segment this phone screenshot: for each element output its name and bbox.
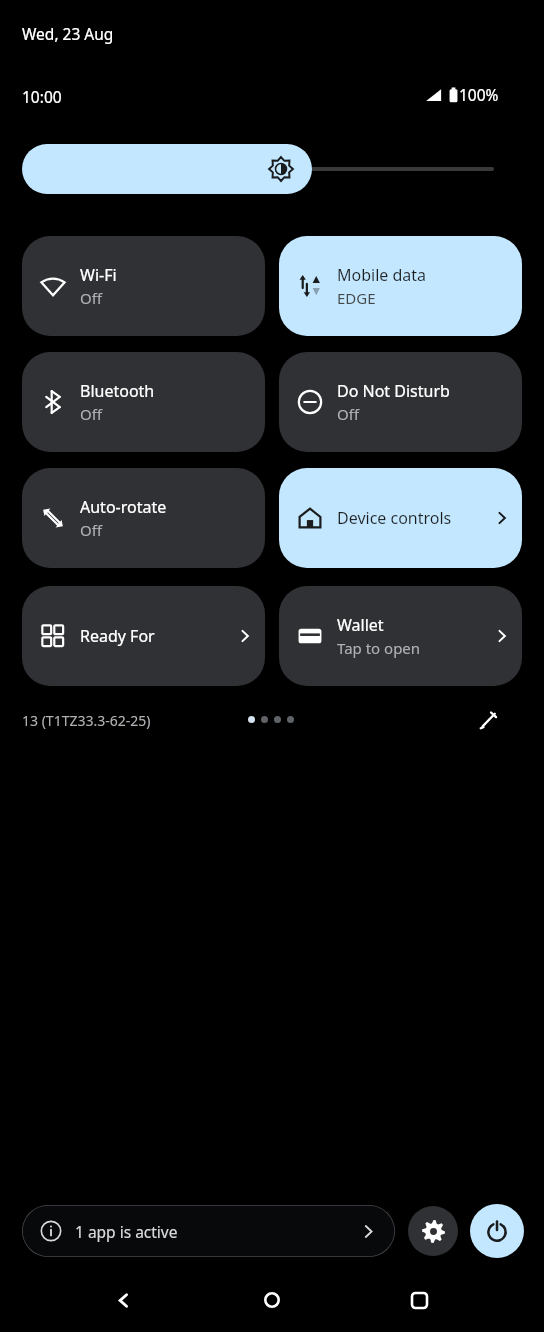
staticText: EDGE [337,288,376,308]
button[interactable]: Ready For [22,586,265,686]
button[interactable]: Wallet [279,586,522,686]
button[interactable] [22,144,494,194]
staticText: 13 (T1TZ33.3-62-25) [22,711,151,730]
staticText: 1 app is active [75,1221,178,1242]
staticText: Device controls [337,507,452,529]
staticText: Ready For [80,625,155,647]
button[interactable]: Home [252,1280,292,1320]
button[interactable]: Mobile data [279,236,522,336]
staticText: Do Not Disturb [337,380,450,402]
button[interactable]: Recent apps [399,1280,439,1320]
staticText: Tap to open [337,638,421,658]
staticText: Wi-Fi [80,264,117,286]
staticText: Wed, 23 Aug [22,23,114,44]
button[interactable]: Auto-rotate [22,468,265,568]
staticText: Off [80,288,103,308]
staticText: Off [80,520,103,540]
button[interactable]: Do Not Disturb [279,352,522,452]
button[interactable]: Bluetooth [22,352,265,452]
staticText: Off [337,404,360,424]
button[interactable]: Wi-Fi [22,236,265,336]
staticText: 100% [459,84,499,105]
button[interactable]: 1 app is active [22,1205,395,1257]
button[interactable]: Settings [408,1206,458,1256]
button[interactable]: Back [103,1280,143,1320]
staticText: Off [80,404,103,424]
staticText: Wallet [337,614,384,636]
button[interactable]: Edit tiles [470,702,506,738]
staticText: Mobile data [337,264,427,286]
button[interactable]: Power [470,1204,524,1258]
staticText: Bluetooth [80,380,155,402]
staticText: Auto-rotate [80,496,167,518]
staticText: 10:00 [22,86,62,107]
button[interactable]: Device controls [279,468,522,568]
